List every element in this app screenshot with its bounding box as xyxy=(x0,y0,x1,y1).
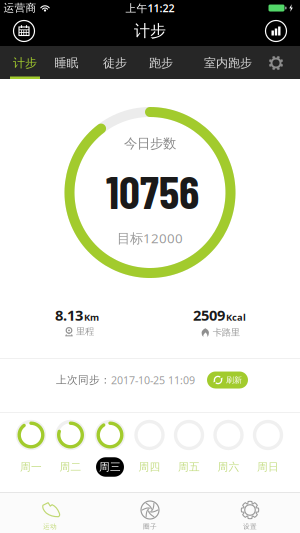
staticText: 卡路里 xyxy=(213,327,240,338)
button[interactable]: 运动 xyxy=(5,492,95,533)
button[interactable]: 睡眠 xyxy=(54,56,78,70)
button[interactable]: 周六 xyxy=(213,420,243,486)
staticText: Kcal xyxy=(226,311,246,323)
button[interactable]: 周三 xyxy=(95,420,125,486)
staticText: 计步 xyxy=(134,21,166,41)
staticText: 睡眠 xyxy=(54,56,78,70)
button[interactable]: 设置 xyxy=(205,492,295,533)
staticText: 上午11:22 xyxy=(125,1,174,15)
button[interactable]: 圈子 xyxy=(105,492,195,533)
staticText: 今日步数 xyxy=(124,135,176,152)
staticText: 周六 xyxy=(217,460,239,473)
staticText: 周三 xyxy=(99,460,121,473)
button[interactable]: 周日 xyxy=(253,420,283,486)
staticText: 圈子 xyxy=(143,522,157,531)
staticText: 徒步 xyxy=(103,56,127,70)
staticText: 10756 xyxy=(106,163,199,218)
button[interactable]: 周一 xyxy=(16,420,46,486)
staticText: 设置 xyxy=(243,522,257,531)
staticText: 里程 xyxy=(76,326,94,337)
staticText: 刷新 xyxy=(226,375,242,385)
staticText: 周四 xyxy=(138,460,160,473)
button[interactable]: 跑步 xyxy=(149,56,173,70)
button[interactable]: 周二 xyxy=(55,420,85,486)
staticText: 上次同步： xyxy=(56,373,111,386)
button[interactable]: 计步 xyxy=(13,56,37,70)
staticText: 跑步 xyxy=(149,56,173,70)
staticText: 周一 xyxy=(20,460,42,473)
button[interactable]: 室内跑步 xyxy=(204,56,252,70)
button[interactable]: 统计 xyxy=(264,19,288,43)
staticText: 周二 xyxy=(59,460,81,473)
staticText: 目标12000 xyxy=(117,229,183,247)
button[interactable]: 徒步 xyxy=(103,56,127,70)
staticText: 8.13 xyxy=(55,305,83,325)
button[interactable]: 设置 xyxy=(268,55,283,70)
staticText: 运营商 xyxy=(3,1,36,14)
staticText: 周日 xyxy=(257,460,279,473)
staticText: 运动 xyxy=(43,522,57,531)
staticText: 计步 xyxy=(13,56,37,70)
staticText: 2509 xyxy=(193,305,225,325)
staticText: 周五 xyxy=(178,460,200,473)
button[interactable]: 周五 xyxy=(174,420,204,486)
button[interactable]: 刷新 xyxy=(207,371,248,388)
button[interactable]: 周四 xyxy=(134,420,164,486)
staticText: 室内跑步 xyxy=(204,56,252,70)
staticText: 2017-10-25 11:09 xyxy=(111,373,195,387)
button[interactable]: 历史记录 xyxy=(12,19,36,43)
staticText: Km xyxy=(84,311,99,323)
